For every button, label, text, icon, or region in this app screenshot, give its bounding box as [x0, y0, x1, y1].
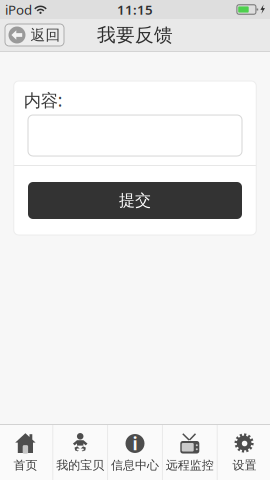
button[interactable]: i: [108, 425, 162, 480]
button[interactable]: 返回: [5, 24, 64, 46]
staticText: 我要反馈: [97, 23, 173, 46]
staticText: 提交: [119, 191, 151, 210]
button[interactable]: 远程监控: [163, 425, 217, 480]
staticText: 远程监控: [166, 458, 214, 473]
staticText: i: [132, 432, 137, 455]
button[interactable]: 设置: [218, 425, 270, 480]
staticText: 内容:: [24, 88, 63, 111]
staticText: iPod: [5, 1, 32, 18]
staticText: 返回: [30, 26, 60, 44]
button[interactable]: 首页: [0, 425, 52, 480]
staticText: 信息中心: [111, 458, 159, 473]
staticText: 我的宝贝: [56, 458, 104, 473]
staticText: 11:15: [117, 1, 153, 18]
staticText: 设置: [233, 458, 257, 473]
staticText: 首页: [13, 458, 37, 473]
button[interactable]: 我的宝贝: [53, 425, 107, 480]
button[interactable]: 提交: [28, 182, 242, 219]
